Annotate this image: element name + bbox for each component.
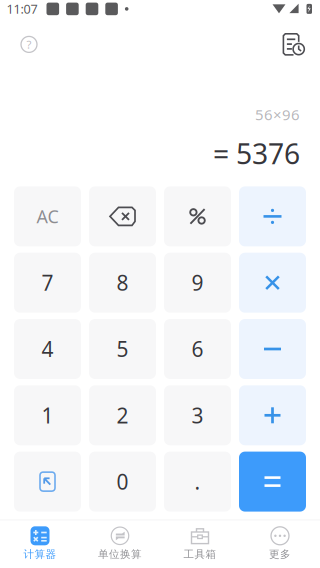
button[interactable]: Subtract xyxy=(239,319,306,379)
button[interactable]: Help xyxy=(12,27,46,61)
button[interactable]: 2 xyxy=(89,385,156,445)
staticText: 计算器 xyxy=(23,548,56,561)
button[interactable]: Divide xyxy=(239,186,306,246)
staticText: 5 xyxy=(116,335,128,363)
button[interactable]: 0 xyxy=(89,452,156,512)
button[interactable]: 5 xyxy=(89,319,156,379)
staticText: 56×96 xyxy=(255,104,300,124)
button[interactable]: 9 xyxy=(164,253,231,313)
button[interactable]: Percent xyxy=(164,186,231,246)
button[interactable]: 3 xyxy=(164,385,231,445)
button[interactable]: Backspace xyxy=(89,186,156,246)
staticText: 4 xyxy=(41,335,53,363)
staticText: ? xyxy=(26,37,31,52)
button[interactable]: 7 xyxy=(14,253,81,313)
button[interactable]: 单位换算 xyxy=(80,520,160,568)
staticText: 8 xyxy=(116,268,128,297)
staticText: 2 xyxy=(116,401,128,429)
staticText: 3 xyxy=(191,401,203,429)
staticText: 工具箱 xyxy=(183,548,216,561)
staticText: 6 xyxy=(191,335,203,363)
button[interactable]: History xyxy=(277,27,311,61)
button[interactable]: 4 xyxy=(14,319,81,379)
staticText: 更多 xyxy=(269,548,291,561)
button[interactable]: 8 xyxy=(89,253,156,313)
staticText: 单位换算 xyxy=(98,548,142,561)
button[interactable]: AC xyxy=(14,186,81,246)
staticText: AC xyxy=(36,204,58,228)
staticText: 9 xyxy=(191,268,203,297)
button[interactable]: . xyxy=(164,452,231,512)
button[interactable]: 工具箱 xyxy=(160,520,240,568)
button[interactable]: Equals xyxy=(239,452,306,512)
staticText: 1 xyxy=(41,401,53,429)
button[interactable]: 6 xyxy=(164,319,231,379)
staticText: 7 xyxy=(41,268,53,297)
button[interactable]: Add xyxy=(239,385,306,445)
staticText: . xyxy=(194,467,200,496)
staticText: 11:07 xyxy=(6,0,37,18)
button[interactable]: 1 xyxy=(14,385,81,445)
button[interactable]: 更多 xyxy=(240,520,320,568)
button[interactable]: Expand xyxy=(14,452,81,512)
button[interactable]: Multiply xyxy=(239,253,306,313)
button[interactable]: 计算器 xyxy=(0,520,80,568)
staticText: = 5376 xyxy=(213,134,300,173)
staticText: 0 xyxy=(116,467,128,496)
